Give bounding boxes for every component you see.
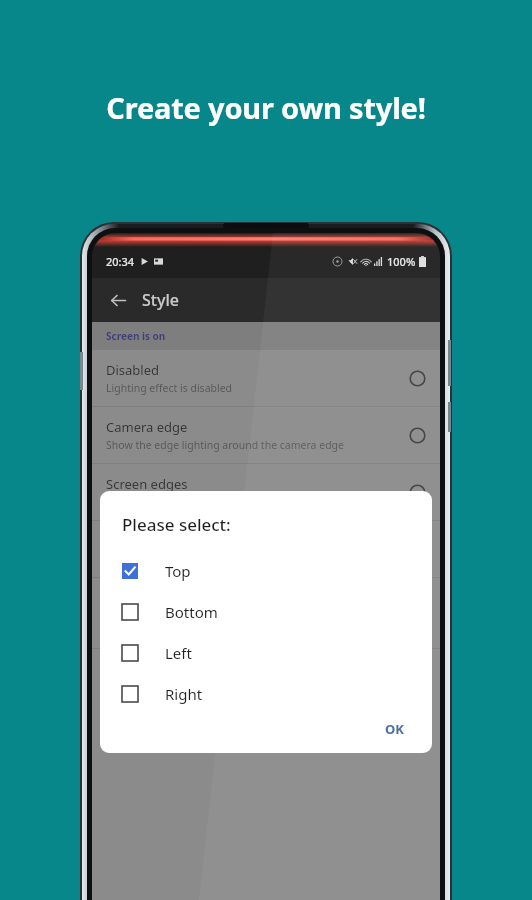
button[interactable]: Back (102, 284, 134, 316)
staticText: Lighting effect is disabled (106, 381, 233, 395)
button[interactable]: Screen edges (92, 464, 440, 520)
button[interactable]: Left (122, 632, 414, 673)
staticText: Screen edges (106, 475, 188, 493)
staticText: OK (385, 720, 404, 737)
staticText: Bottom (165, 602, 218, 622)
button[interactable]: Notification LED (92, 521, 440, 577)
staticText: Please select: (122, 513, 231, 536)
staticText: 100% (387, 254, 416, 269)
button[interactable]: Disabled (92, 350, 440, 406)
staticText: Top (165, 561, 191, 581)
staticText: Style (142, 289, 179, 311)
staticText: Show a lighting effect around the finger… (106, 609, 362, 637)
button[interactable]: Bottom (122, 591, 414, 632)
button[interactable]: Right (122, 673, 414, 714)
staticText: Screen is on (106, 329, 166, 343)
staticText: 20:34 (106, 254, 135, 269)
staticText: Create your own style! (0, 88, 532, 127)
button[interactable]: Camera edge (92, 407, 440, 463)
staticText: Left (165, 643, 192, 663)
staticText: Show a "LED" dot in the statusbar (106, 552, 272, 566)
staticText: Fingerprint sensor (106, 589, 219, 607)
button[interactable]: OK (375, 714, 414, 743)
staticText: Show the edge lighting around the camera… (106, 438, 344, 452)
staticText: Camera edge (106, 418, 188, 436)
staticText: Right (165, 684, 203, 704)
button[interactable]: Fingerprint sensor (92, 578, 440, 648)
button[interactable]: Top (122, 550, 414, 591)
staticText: Disabled (106, 361, 160, 379)
